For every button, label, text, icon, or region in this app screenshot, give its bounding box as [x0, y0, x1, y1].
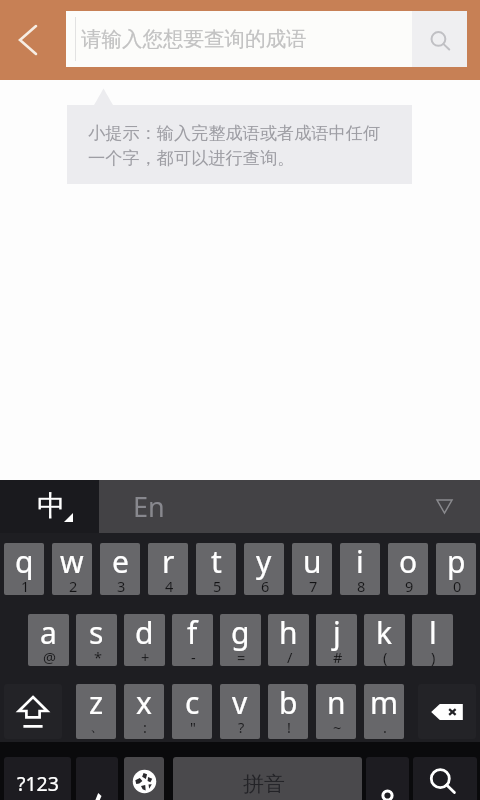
staticText: b	[279, 684, 298, 723]
button[interactable]: 中	[0, 480, 99, 533]
staticText: h	[279, 614, 298, 653]
button[interactable]: e	[100, 543, 140, 595]
button[interactable]: Back	[0, 0, 66, 80]
staticText: ?	[238, 717, 245, 737]
staticText: (	[383, 647, 388, 666]
button[interactable]: w	[52, 543, 92, 595]
staticText: u	[303, 543, 322, 582]
staticText: g	[231, 614, 250, 653]
button[interactable]: Comma	[76, 757, 118, 800]
button[interactable]: u	[292, 543, 332, 595]
staticText: 请输入您想要查询的成语	[81, 26, 307, 52]
staticText: =	[237, 647, 246, 666]
button[interactable]: 请输入您想要查询的成语	[66, 11, 467, 67]
staticText: w	[60, 543, 84, 582]
staticText: ?123	[17, 770, 59, 797]
staticText: d	[135, 614, 154, 653]
staticText: *	[94, 647, 102, 666]
button[interactable]: z	[76, 684, 116, 739]
staticText: r	[162, 543, 175, 582]
button[interactable]: q	[4, 543, 44, 595]
staticText: 7	[309, 576, 318, 595]
staticText: j	[333, 614, 341, 653]
button[interactable]: y	[244, 543, 284, 595]
button[interactable]: Search	[412, 11, 467, 67]
button[interactable]: c	[172, 684, 212, 739]
button[interactable]: o	[388, 543, 428, 595]
staticText: 3	[117, 576, 126, 595]
button[interactable]: p	[436, 543, 476, 595]
staticText: @	[43, 647, 57, 666]
staticText: k	[376, 614, 393, 653]
button[interactable]: v	[220, 684, 260, 739]
button[interactable]: d	[124, 614, 165, 666]
staticText: .	[383, 717, 387, 737]
button[interactable]: b	[268, 684, 308, 739]
staticText: /	[287, 647, 293, 666]
staticText: o	[399, 543, 418, 582]
staticText: 6	[261, 576, 270, 595]
staticText: ~	[333, 717, 342, 737]
button[interactable]: h	[268, 614, 309, 666]
button[interactable]: f	[172, 614, 213, 666]
other: Hide keyboard	[437, 500, 452, 513]
staticText: 1	[21, 576, 30, 595]
staticText: 0	[453, 576, 462, 595]
staticText: -	[191, 647, 196, 666]
staticText: En	[133, 488, 165, 525]
button[interactable]: r	[148, 543, 188, 595]
button[interactable]: 拼音	[173, 757, 362, 800]
button[interactable]: Change input language	[124, 757, 164, 800]
staticText: 小提示：输入完整成语或者成语中任何	[88, 122, 381, 144]
staticText: y	[256, 543, 272, 582]
staticText: m	[370, 684, 399, 723]
staticText: z	[89, 684, 104, 723]
staticText: 拼音	[243, 771, 285, 797]
button[interactable]: x	[124, 684, 164, 739]
button[interactable]: a	[28, 614, 69, 666]
button[interactable]: Period	[366, 757, 409, 800]
staticText: 、	[90, 717, 105, 735]
staticText: l	[429, 614, 437, 653]
staticText: a	[40, 614, 57, 653]
staticText: 2	[69, 576, 78, 595]
staticText: )	[431, 647, 436, 666]
button[interactable]: t	[196, 543, 236, 595]
button[interactable]: En	[99, 480, 480, 533]
button[interactable]: Backspace	[418, 684, 476, 739]
button[interactable]: s	[76, 614, 117, 666]
button[interactable]: m	[364, 684, 404, 739]
staticText: f	[187, 614, 198, 653]
staticText: :	[143, 717, 147, 737]
button[interactable]: i	[340, 543, 380, 595]
button[interactable]: ?123	[4, 757, 71, 800]
staticText: t	[211, 543, 222, 582]
staticText: +	[141, 647, 150, 666]
button[interactable]: Shift	[4, 684, 62, 739]
staticText: "	[190, 717, 196, 737]
staticText: 9	[405, 576, 414, 595]
staticText: 中	[37, 488, 65, 523]
button[interactable]: l	[412, 614, 453, 666]
staticText: v	[232, 684, 248, 723]
staticText: p	[447, 543, 466, 582]
staticText: x	[136, 684, 152, 723]
staticText: n	[327, 684, 346, 723]
staticText: e	[112, 543, 129, 582]
staticText: 4	[165, 576, 174, 595]
button[interactable]: Search	[413, 757, 477, 800]
staticText: !	[287, 717, 291, 737]
button[interactable]: n	[316, 684, 356, 739]
staticText: 8	[357, 576, 366, 595]
staticText: i	[356, 543, 364, 582]
staticText: s	[89, 614, 104, 653]
staticText: 5	[213, 576, 222, 595]
button[interactable]: j	[316, 614, 357, 666]
staticText: q	[15, 543, 34, 582]
button[interactable]: g	[220, 614, 261, 666]
button[interactable]: k	[364, 614, 405, 666]
staticText: 一个字，都可以进行查询。	[88, 147, 295, 169]
staticText: #	[333, 647, 343, 666]
staticText: c	[185, 684, 200, 723]
